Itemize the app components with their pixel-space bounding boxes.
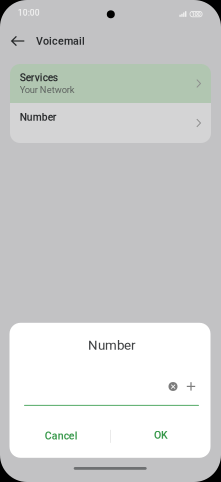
button[interactable]: Services xyxy=(10,64,211,103)
button[interactable]: Cancel xyxy=(16,423,106,449)
staticText: 10:00 xyxy=(18,8,40,18)
staticText: Your Network xyxy=(20,84,75,95)
staticText: 100 xyxy=(192,11,201,17)
staticText: Number xyxy=(88,337,136,353)
button[interactable]: OK xyxy=(116,422,206,448)
button[interactable]: Number xyxy=(10,103,211,143)
staticText: Services xyxy=(20,72,58,84)
staticText: OK xyxy=(154,429,168,441)
staticText: Cancel xyxy=(45,430,78,442)
button[interactable]: Add number xyxy=(183,378,199,394)
staticText: Number xyxy=(20,111,57,123)
staticText: Voicemail xyxy=(36,35,85,47)
button[interactable]: Back xyxy=(6,29,30,53)
